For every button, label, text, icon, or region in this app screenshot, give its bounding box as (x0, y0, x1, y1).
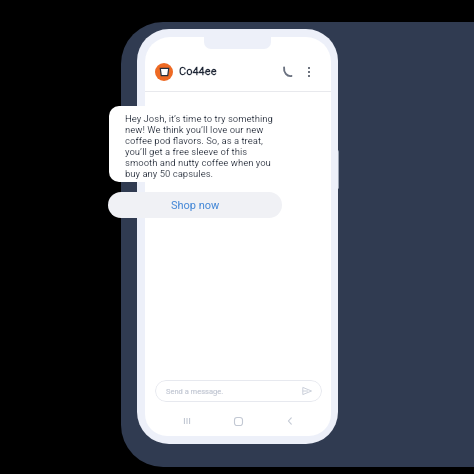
staticText: Hey Josh, it’s time to try something new… (125, 113, 274, 179)
staticText: Co44ee (179, 65, 217, 78)
button[interactable]: More options (304, 64, 314, 80)
button[interactable]: Send (300, 384, 314, 398)
button[interactable]: Home (228, 411, 248, 431)
button[interactable]: Back (280, 411, 300, 431)
button[interactable]: Recent apps (177, 411, 197, 431)
button[interactable]: Send a message. (155, 380, 322, 402)
button[interactable]: Hey Josh, it’s time to try something new… (109, 106, 275, 182)
staticText: Send a message. (166, 387, 224, 396)
staticText: Shop now (171, 199, 220, 212)
button[interactable]: Shop now (108, 192, 282, 218)
button[interactable]: Call (279, 64, 295, 80)
